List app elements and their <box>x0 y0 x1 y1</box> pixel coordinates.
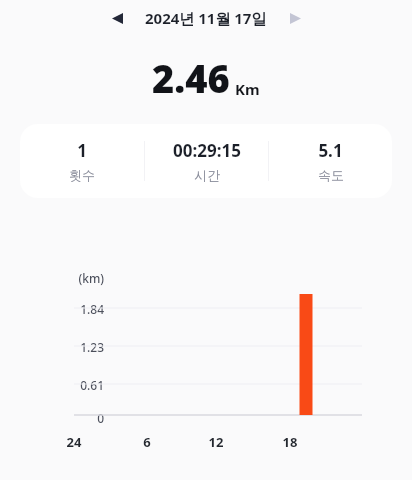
staticText: (km) <box>36 270 104 286</box>
staticText: 시간 <box>194 167 220 183</box>
button[interactable]: 5.1 <box>269 139 392 183</box>
staticText: 1 <box>77 139 87 162</box>
staticText: 0 <box>36 410 104 426</box>
staticText: 24 <box>62 433 86 450</box>
button[interactable]: Previous day <box>103 4 131 32</box>
staticText: 2.46 <box>152 52 230 104</box>
button[interactable]: 1 <box>20 139 144 183</box>
staticText: 0.61 <box>36 377 104 393</box>
staticText: 18 <box>278 433 302 450</box>
button[interactable]: Next day <box>281 4 309 32</box>
staticText: 00:29:15 <box>173 139 241 162</box>
staticText: 1.23 <box>36 339 104 355</box>
staticText: 5.1 <box>318 139 343 162</box>
button[interactable]: 00:29:15 <box>145 139 268 183</box>
staticText: 2024년 11월 17일 <box>145 8 267 28</box>
staticText: 횟수 <box>69 167 95 183</box>
staticText: Km <box>235 79 260 99</box>
staticText: 6 <box>135 433 159 450</box>
staticText: 12 <box>204 433 228 450</box>
staticText: 속도 <box>318 167 344 183</box>
staticText: 1.84 <box>36 301 104 317</box>
